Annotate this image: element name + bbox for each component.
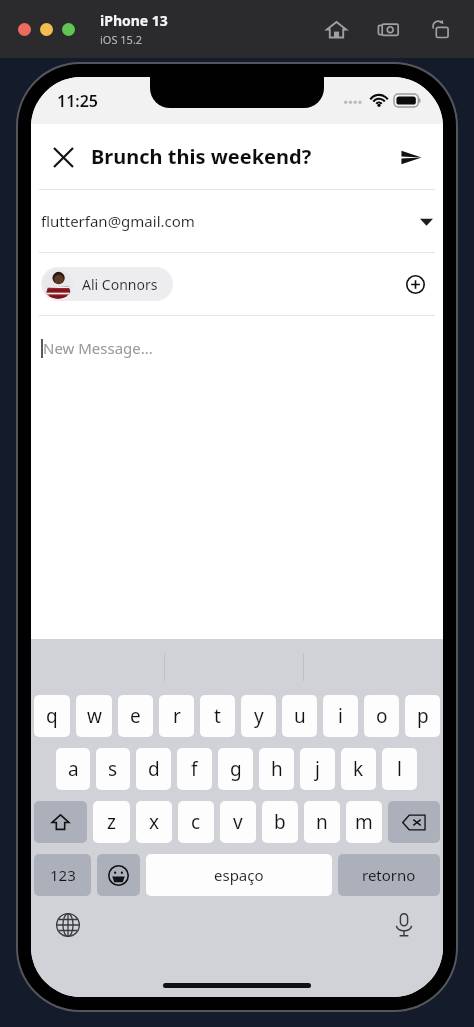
- staticText: r: [173, 703, 181, 729]
- staticText: Ali Connors: [82, 275, 158, 294]
- staticText: retorno: [362, 865, 416, 885]
- staticText: a: [68, 756, 79, 782]
- button[interactable]: q: [34, 695, 70, 737]
- staticText: v: [233, 809, 243, 835]
- button[interactable]: a: [56, 748, 90, 790]
- staticText: x: [149, 809, 160, 835]
- button[interactable]: Home: [322, 15, 350, 43]
- button[interactable]: 123: [34, 854, 91, 896]
- button[interactable]: w: [76, 695, 112, 737]
- button[interactable]: Zoom window: [62, 23, 75, 36]
- staticText: f: [191, 756, 198, 782]
- button[interactable]: z: [93, 801, 130, 843]
- staticText: b: [274, 809, 286, 835]
- button[interactable]: e: [118, 695, 153, 737]
- staticText: q: [46, 703, 58, 729]
- button[interactable]: c: [178, 801, 214, 843]
- staticText: o: [376, 703, 388, 729]
- button[interactable]: Close: [41, 135, 85, 179]
- button[interactable]: n: [304, 801, 340, 843]
- button[interactable]: l: [382, 748, 417, 790]
- button[interactable]: r: [159, 695, 194, 737]
- button[interactable]: Dictate: [387, 908, 421, 942]
- staticText: m: [355, 809, 373, 835]
- staticText: t: [214, 703, 221, 729]
- button[interactable]: y: [241, 695, 276, 737]
- staticText: 123: [50, 865, 76, 885]
- button[interactable]: espaço: [146, 854, 332, 896]
- staticText: l: [397, 756, 402, 782]
- button[interactable]: m: [346, 801, 382, 843]
- button[interactable]: h: [259, 748, 294, 790]
- button[interactable]: x: [136, 801, 172, 843]
- staticText: k: [353, 756, 364, 782]
- button[interactable]: b: [262, 801, 298, 843]
- button[interactable]: u: [282, 695, 317, 737]
- button[interactable]: retorno: [338, 854, 440, 896]
- staticText: h: [271, 756, 283, 782]
- staticText: g: [230, 756, 242, 782]
- button[interactable]: Shift: [34, 801, 87, 843]
- staticText: w: [87, 703, 102, 729]
- staticText: y: [254, 703, 264, 729]
- staticText: i: [338, 703, 343, 729]
- staticText: New Message...: [43, 338, 153, 358]
- button[interactable]: o: [364, 695, 399, 737]
- button[interactable]: s: [96, 748, 130, 790]
- button[interactable]: Minimize window: [40, 23, 53, 36]
- button[interactable]: Add recipient: [397, 266, 433, 302]
- button[interactable]: flutterfan@gmail.com: [31, 190, 443, 252]
- button[interactable]: k: [341, 748, 376, 790]
- staticText: n: [316, 809, 328, 835]
- staticText: iOS 15.2: [100, 32, 143, 47]
- staticText: u: [294, 703, 306, 729]
- staticText: e: [130, 703, 141, 729]
- staticText: d: [148, 756, 160, 782]
- staticText: c: [191, 809, 201, 835]
- button[interactable]: t: [200, 695, 235, 737]
- button[interactable]: Rotate: [426, 15, 454, 43]
- button[interactable]: i: [323, 695, 358, 737]
- staticText: j: [315, 756, 320, 782]
- button[interactable]: Close window: [18, 23, 31, 36]
- staticText: iPhone 13: [100, 11, 168, 30]
- button[interactable]: f: [177, 748, 212, 790]
- staticText: Brunch this weekend?: [91, 143, 312, 170]
- staticText: 11:25: [57, 90, 99, 112]
- staticText: flutterfan@gmail.com: [41, 211, 195, 231]
- button[interactable]: New Message...: [31, 316, 443, 639]
- button[interactable]: Backspace: [388, 801, 440, 843]
- button[interactable]: j: [300, 748, 335, 790]
- button[interactable]: Screenshot: [374, 15, 402, 43]
- staticText: s: [108, 756, 118, 782]
- button[interactable]: d: [136, 748, 171, 790]
- staticText: espaço: [214, 865, 264, 885]
- button[interactable]: Send: [389, 135, 433, 179]
- button[interactable]: Change keyboard language: [51, 908, 85, 942]
- button[interactable]: g: [218, 748, 253, 790]
- button[interactable]: v: [220, 801, 256, 843]
- button[interactable]: p: [405, 695, 440, 737]
- staticText: z: [107, 809, 116, 835]
- button[interactable]: Ali Connors: [41, 267, 173, 301]
- staticText: p: [417, 703, 429, 729]
- button[interactable]: Emoji: [97, 854, 140, 896]
